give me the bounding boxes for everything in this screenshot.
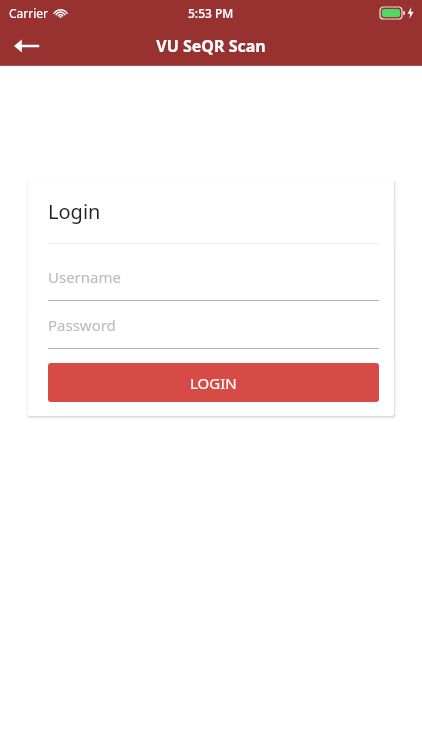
staticText: 5:53 PM	[188, 5, 234, 21]
staticText: Carrier	[9, 5, 49, 21]
button[interactable]: Back	[8, 27, 46, 65]
staticText: LOGIN	[190, 373, 237, 393]
staticText: Login	[48, 198, 101, 225]
button[interactable]: LOGIN	[48, 363, 379, 402]
staticText: VU SeQR Scan	[156, 35, 266, 57]
staticText: Password	[48, 315, 116, 335]
button[interactable]: Password	[48, 301, 379, 349]
staticText: Username	[48, 267, 121, 287]
button[interactable]: Username	[48, 244, 379, 301]
